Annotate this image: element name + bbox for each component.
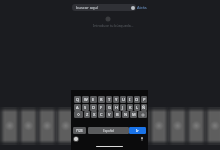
staticText: Ñ	[142, 105, 146, 110]
staticText: Z	[86, 112, 89, 117]
button[interactable]: N	[122, 111, 129, 118]
button[interactable]: F	[98, 104, 105, 111]
button[interactable]: W	[82, 96, 89, 103]
button[interactable]: K	[127, 104, 133, 111]
button[interactable]: Atrás	[137, 5, 147, 10]
staticText: N	[124, 112, 128, 117]
button[interactable]: G	[106, 104, 112, 111]
staticText: X	[93, 112, 96, 117]
staticText: D	[92, 105, 95, 110]
button[interactable]: Q	[74, 96, 81, 103]
staticText: E	[92, 97, 95, 102]
staticText: L	[136, 105, 139, 110]
button[interactable]: Borrar	[131, 6, 135, 10]
button[interactable]: Emoji	[73, 136, 79, 142]
button[interactable]: Y	[113, 96, 119, 103]
button[interactable]: Mayúsculas	[74, 111, 83, 118]
button[interactable]: Ir	[129, 127, 146, 134]
button[interactable]: O	[134, 96, 140, 103]
staticText: B	[116, 112, 119, 117]
staticText: I	[129, 97, 131, 102]
button[interactable]: L	[134, 104, 140, 111]
button[interactable]: V	[106, 111, 113, 118]
staticText: M	[132, 112, 136, 117]
button[interactable]: Borrar	[138, 111, 147, 118]
button[interactable]: Voz	[139, 136, 145, 142]
staticText: V	[108, 112, 111, 117]
button[interactable]: Ñ	[141, 104, 147, 111]
button[interactable]: buscar aquí	[72, 4, 136, 11]
staticText: J	[122, 105, 124, 110]
staticText: Introduce tu búsqueda...	[93, 23, 134, 28]
staticText: Ir	[136, 128, 139, 133]
button[interactable]: U	[120, 96, 126, 103]
staticText: H	[115, 105, 118, 110]
staticText: Y	[115, 97, 118, 102]
button[interactable]: I	[127, 96, 133, 103]
button[interactable]: H	[113, 104, 119, 111]
staticText: ?123	[76, 129, 83, 133]
button[interactable]: C	[98, 111, 105, 118]
button[interactable]: X	[91, 111, 97, 118]
staticText: buscar aquí	[76, 5, 98, 10]
staticText: F	[100, 105, 103, 110]
staticText: P	[143, 97, 146, 102]
button[interactable]: A	[74, 104, 81, 111]
button[interactable]: B	[114, 111, 121, 118]
staticText: Español	[103, 129, 115, 133]
button[interactable]: R	[98, 96, 105, 103]
staticText: C	[100, 112, 103, 117]
staticText: Q	[76, 97, 80, 102]
staticText: T	[108, 97, 111, 102]
button[interactable]: ?123	[73, 127, 86, 134]
staticText: K	[129, 105, 132, 110]
staticText: S	[84, 105, 87, 110]
button[interactable]: P	[141, 96, 147, 103]
button[interactable]: E	[90, 96, 97, 103]
staticText: A	[76, 105, 79, 110]
button[interactable]: T	[106, 96, 112, 103]
button[interactable]: S	[82, 104, 89, 111]
staticText: R	[100, 97, 103, 102]
button[interactable]: Z	[84, 111, 90, 118]
button[interactable]: J	[120, 104, 126, 111]
button[interactable]: Español	[88, 127, 129, 134]
staticText: G	[108, 105, 111, 110]
staticText: O	[135, 97, 139, 102]
button[interactable]: D	[90, 104, 97, 111]
staticText: W	[84, 97, 88, 102]
staticText: U	[122, 97, 125, 102]
button[interactable]: M	[130, 111, 137, 118]
